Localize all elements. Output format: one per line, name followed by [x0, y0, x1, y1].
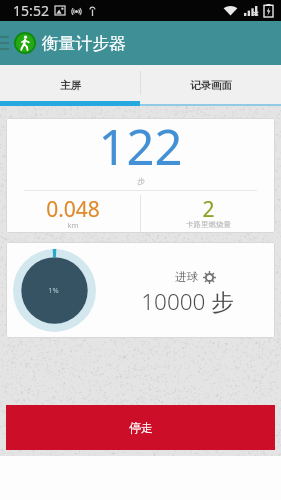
staticText: 卡路里燃烧量	[186, 220, 231, 229]
staticText: 10000 步	[141, 286, 234, 317]
staticText: 记录画面	[190, 79, 232, 92]
staticText: 1%	[48, 285, 59, 295]
staticText: 步	[137, 176, 145, 186]
staticText: km	[67, 220, 79, 230]
button[interactable]: 122	[6, 118, 275, 233]
button[interactable]: Open navigation menu	[0, 21, 13, 65]
staticText: 122	[98, 118, 183, 173]
staticText: 衡量计步器	[42, 33, 126, 54]
staticText: 停走	[129, 420, 153, 435]
staticText: 主屏	[60, 79, 81, 92]
button[interactable]: 停走	[6, 405, 275, 450]
staticText: 15:52	[13, 1, 49, 20]
staticText: 0.048	[46, 195, 100, 224]
button[interactable]: 记录画面	[141, 65, 281, 101]
button[interactable]: Edit goal settings	[203, 271, 216, 284]
staticText: 进球	[175, 270, 198, 284]
button[interactable]: 主屏	[0, 65, 140, 101]
staticText: 2	[202, 195, 215, 224]
